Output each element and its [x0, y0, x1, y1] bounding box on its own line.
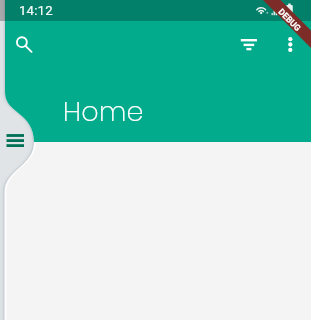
staticText: DEBUG	[277, 7, 303, 33]
button[interactable]: Filter	[234, 32, 260, 58]
staticText: 14:12	[19, 3, 53, 18]
button[interactable]: Search	[11, 32, 37, 58]
button[interactable]: Open navigation drawer	[0, 127, 30, 155]
button[interactable]: More options	[277, 32, 303, 58]
staticText: Home	[63, 93, 144, 131]
